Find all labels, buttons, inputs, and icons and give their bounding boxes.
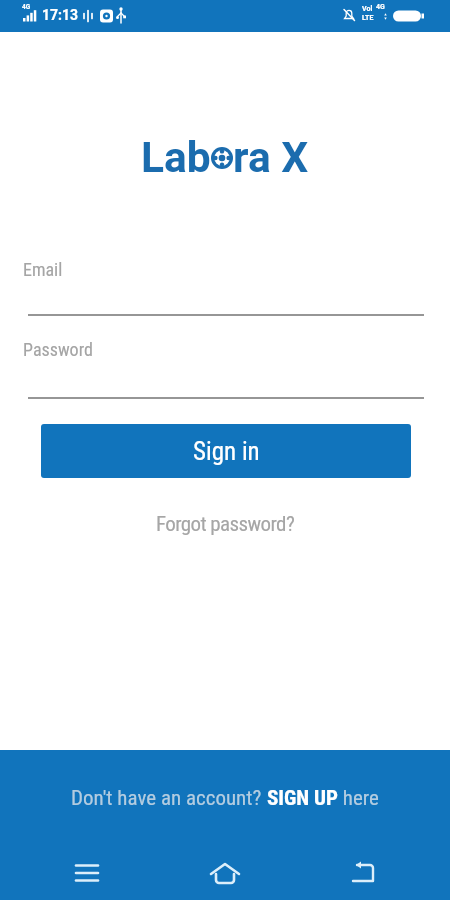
staticText: Sign in xyxy=(193,437,260,466)
staticText: Vol xyxy=(362,5,373,13)
staticText: Don't have an account? xyxy=(71,786,267,811)
button[interactable]: Don't have an account? xyxy=(0,786,450,811)
staticText: 4G xyxy=(376,3,385,11)
button[interactable] xyxy=(200,850,250,900)
staticText: here xyxy=(338,786,379,811)
staticText: ra X xyxy=(233,133,309,183)
staticText: SIGN UP xyxy=(267,786,338,811)
button[interactable] xyxy=(23,334,424,400)
staticText: 17:13 xyxy=(42,7,79,23)
staticText: LTE xyxy=(362,14,374,22)
button[interactable] xyxy=(23,252,424,318)
button[interactable]: Forgot password? xyxy=(156,512,295,537)
staticText: Email xyxy=(23,259,63,280)
button[interactable] xyxy=(338,850,388,900)
staticText: Password xyxy=(23,339,93,360)
button[interactable] xyxy=(62,850,112,900)
staticText: 4G xyxy=(22,3,31,11)
button[interactable]: Sign in xyxy=(41,424,411,478)
staticText: Lab xyxy=(141,133,211,183)
